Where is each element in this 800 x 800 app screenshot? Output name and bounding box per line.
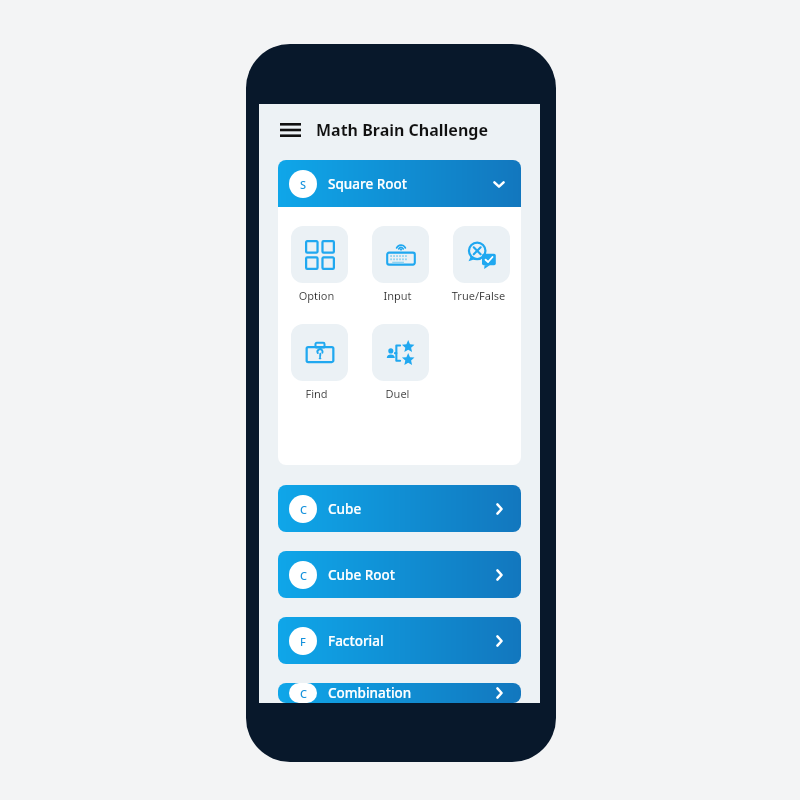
- staticText: Math Brain Challenge: [316, 119, 488, 141]
- other: Expand Cube Root: [488, 564, 510, 586]
- other: Expand Combination: [488, 683, 510, 703]
- staticText: Combination: [328, 684, 412, 702]
- staticText: F: [300, 634, 306, 649]
- button[interactable]: True/False: [453, 226, 510, 303]
- other: Expand Factorial: [488, 630, 510, 652]
- staticText: Cube Root: [328, 566, 395, 584]
- button[interactable]: F: [278, 617, 521, 664]
- staticText: S: [300, 177, 307, 192]
- staticText: C: [300, 686, 307, 701]
- staticText: Square Root: [328, 175, 407, 193]
- button[interactable]: C: [278, 485, 521, 532]
- other: Collapse: [488, 173, 510, 195]
- staticText: Input: [369, 288, 426, 303]
- staticText: Cube: [328, 500, 362, 518]
- staticText: Factorial: [328, 632, 384, 650]
- button[interactable]: Duel: [372, 324, 429, 401]
- other: Expand Cube: [488, 498, 510, 520]
- staticText: Duel: [369, 386, 426, 401]
- button[interactable]: Option: [291, 226, 348, 303]
- staticText: C: [300, 568, 307, 583]
- staticText: Find Missi…: [288, 386, 345, 401]
- button[interactable]: C: [278, 551, 521, 598]
- staticText: Option: [288, 288, 345, 303]
- button[interactable]: Find Missi…: [291, 324, 348, 401]
- staticText: C: [300, 502, 307, 517]
- button[interactable]: S: [278, 160, 521, 207]
- staticText: True/False: [450, 288, 507, 303]
- button[interactable]: C: [278, 683, 521, 703]
- button[interactable]: Open navigation menu: [275, 115, 305, 145]
- button[interactable]: Input: [372, 226, 429, 303]
